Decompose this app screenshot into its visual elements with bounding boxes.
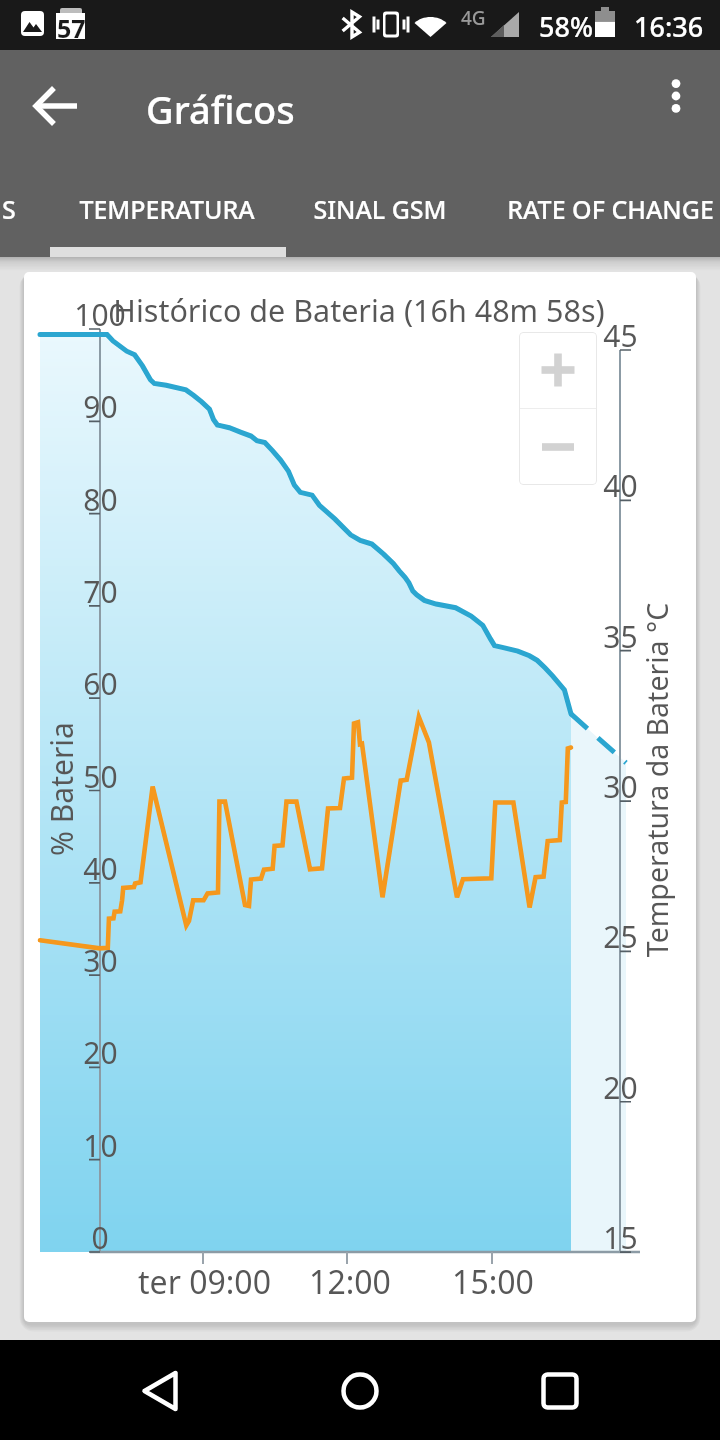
button[interactable]: Zoom out [519, 409, 597, 485]
button[interactable]: S [0, 145, 16, 257]
button[interactable]: Home [320, 1351, 400, 1431]
staticText: 16:36 [634, 8, 704, 45]
staticText: 20 [603, 1067, 638, 1108]
staticText: 12:00 [309, 1260, 391, 1304]
button[interactable]: More options [642, 62, 710, 130]
staticText: 70 [83, 571, 118, 612]
staticText: 15 [603, 1217, 638, 1258]
staticText: TEMPERATURA [79, 192, 255, 226]
staticText: 4G [461, 5, 486, 31]
staticText: 40 [603, 465, 638, 506]
staticText: RATE OF CHANGE [507, 192, 714, 226]
staticText: 50 [83, 756, 118, 797]
staticText: % Bateria [41, 722, 82, 856]
button[interactable]: Recent apps [520, 1351, 600, 1431]
staticText: ter 09:00 [138, 1260, 271, 1304]
staticText: 15:00 [452, 1260, 534, 1304]
staticText: SINAL GSM [313, 192, 447, 226]
button[interactable]: Histórico de Bateria (16h 48m 58s) [24, 272, 696, 1322]
staticText: 90 [83, 386, 118, 427]
staticText: 57 [57, 11, 86, 45]
button[interactable]: Zoom in [519, 332, 597, 408]
staticText: 60 [83, 663, 118, 704]
staticText: 25 [603, 916, 638, 957]
staticText: 10 [83, 1125, 118, 1166]
staticText: 100 [74, 294, 126, 335]
button[interactable]: Back [120, 1351, 200, 1431]
staticText: Temperatura da Bateria °C [637, 602, 676, 957]
staticText: Gráficos [146, 83, 295, 135]
button[interactable]: RATE OF CHANGE [495, 145, 720, 257]
staticText: 35 [603, 616, 638, 657]
staticText: 45 [603, 315, 638, 356]
staticText: Histórico de Bateria (16h 48m 58s) [113, 289, 605, 331]
button[interactable]: SINAL GSM [272, 145, 487, 257]
staticText: 58% [539, 8, 593, 45]
button[interactable]: Back [22, 72, 90, 140]
staticText: S [2, 192, 16, 226]
staticText: 30 [83, 940, 118, 981]
staticText: 30 [603, 766, 638, 807]
staticText: 80 [83, 479, 118, 520]
staticText: 40 [83, 848, 118, 889]
staticText: 20 [83, 1032, 118, 1073]
button[interactable]: TEMPERATURA [47, 145, 287, 257]
staticText: 0 [91, 1217, 109, 1258]
